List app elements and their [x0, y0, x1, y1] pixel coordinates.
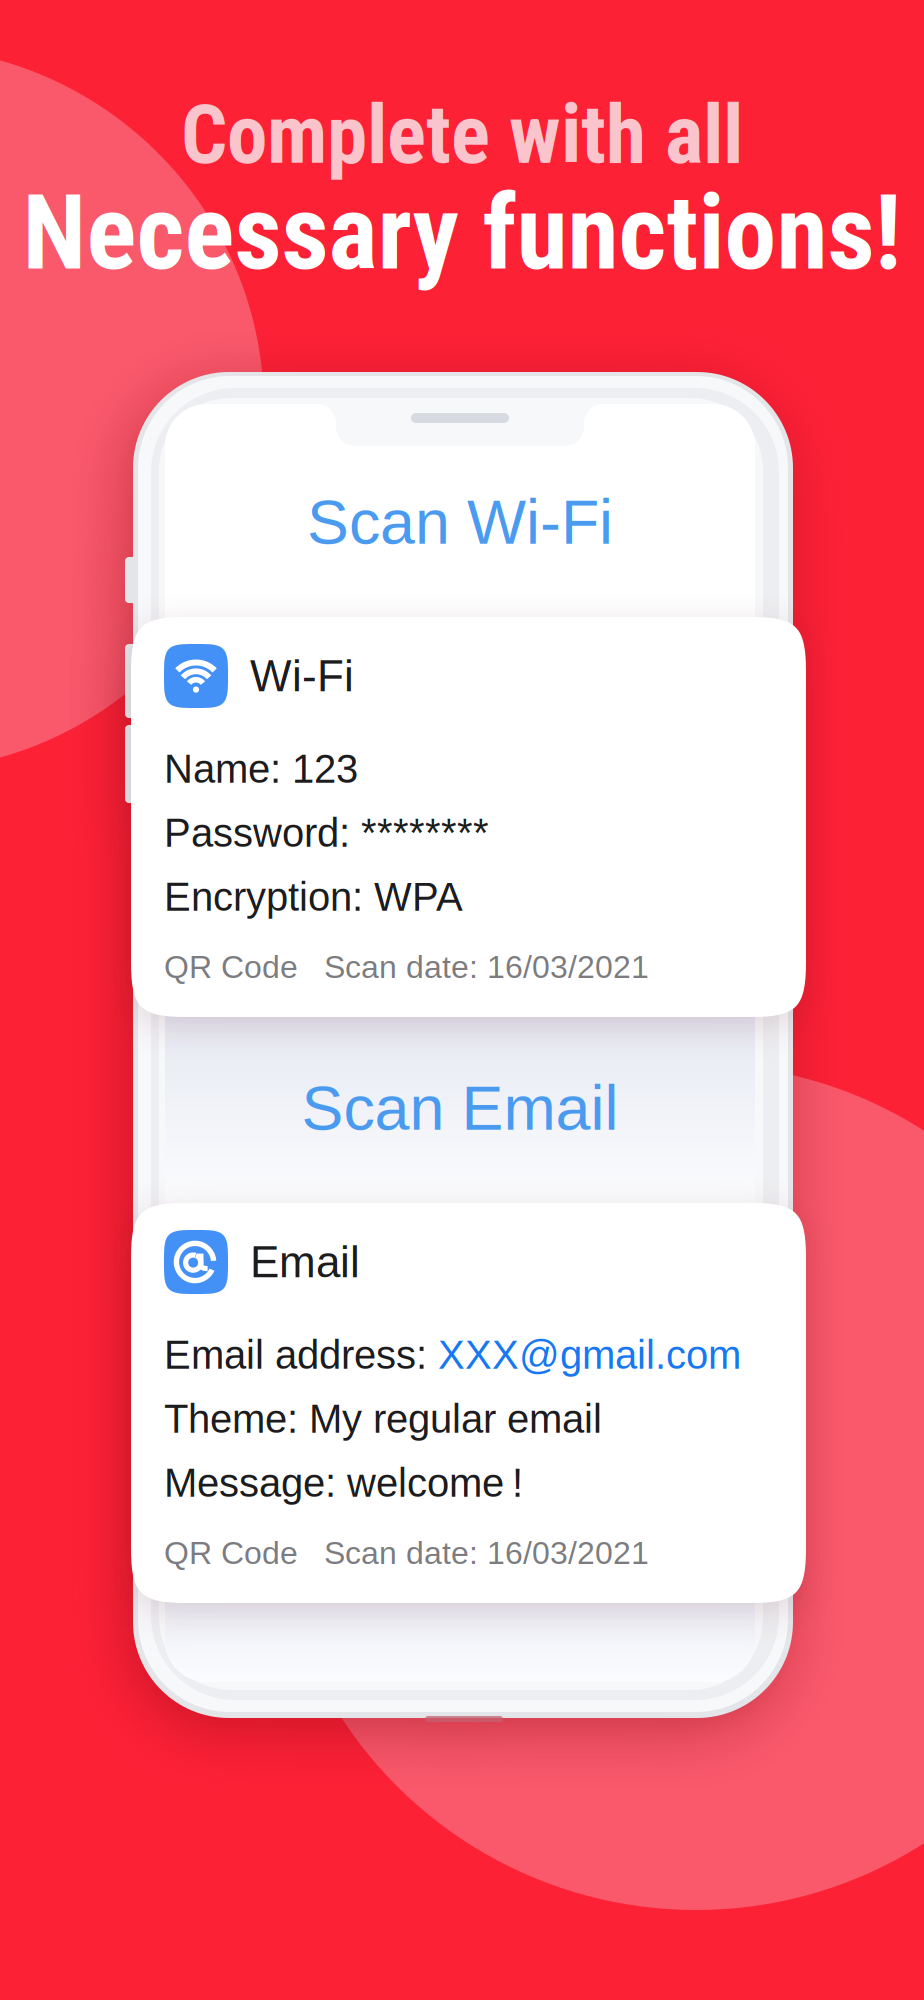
staticText: Complete with all [181, 87, 743, 183]
staticText: QR Code [164, 1535, 298, 1571]
staticText: Theme: [164, 1397, 309, 1441]
button[interactable]: Email scan result [131, 1203, 806, 1603]
staticText: QR Code [164, 949, 298, 985]
staticText: Email address: [164, 1333, 438, 1377]
staticText: Name: [164, 747, 292, 791]
staticText: Email [250, 1237, 360, 1287]
staticText: ******** [361, 811, 489, 855]
staticText: Scan Wi-Fi [307, 487, 613, 557]
staticText: Password: [164, 811, 361, 855]
staticText: Message: [164, 1461, 347, 1505]
staticText: Scan Email [301, 1073, 618, 1143]
staticText: XXX@gmail.com [438, 1333, 741, 1377]
staticText: 123 [292, 747, 358, 791]
staticText: My regular email [309, 1397, 602, 1441]
staticText: Encryption: [164, 875, 374, 919]
staticText: Scan date: 16/03/2021 [324, 1535, 649, 1571]
staticText: Wi-Fi [250, 651, 354, 701]
staticText: Necessary functions! [22, 172, 901, 294]
staticText: Scan date: 16/03/2021 [324, 949, 649, 985]
staticText: welcome ! [347, 1461, 523, 1505]
staticText: WPA [374, 875, 463, 919]
button[interactable]: Wi-Fi scan result [131, 617, 806, 1017]
